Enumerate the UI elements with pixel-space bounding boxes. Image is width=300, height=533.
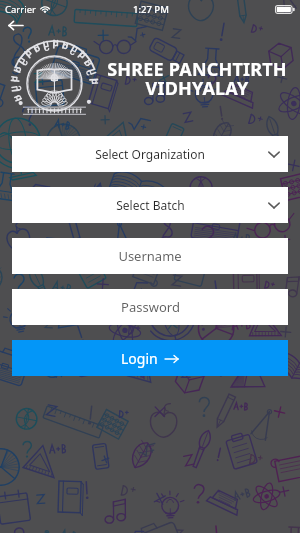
staticText: Password — [121, 298, 180, 316]
button[interactable]: Login — [12, 340, 288, 376]
button[interactable]: Password — [12, 289, 288, 325]
button[interactable]: Select Batch — [12, 187, 288, 223]
staticText: Login — [121, 349, 158, 368]
staticText: Select Batch — [116, 197, 185, 213]
staticText: SHREE PANCHTIRTH VIDHYALAY — [107, 57, 287, 101]
button[interactable]: Select Organization — [12, 136, 288, 172]
staticText: Select Organization — [95, 146, 205, 162]
staticText: 1:27 PM — [133, 3, 169, 16]
staticText: Carrier — [5, 3, 36, 16]
button[interactable]: Back — [8, 18, 36, 32]
button[interactable]: Username — [12, 238, 288, 274]
staticText: Username — [118, 247, 182, 265]
